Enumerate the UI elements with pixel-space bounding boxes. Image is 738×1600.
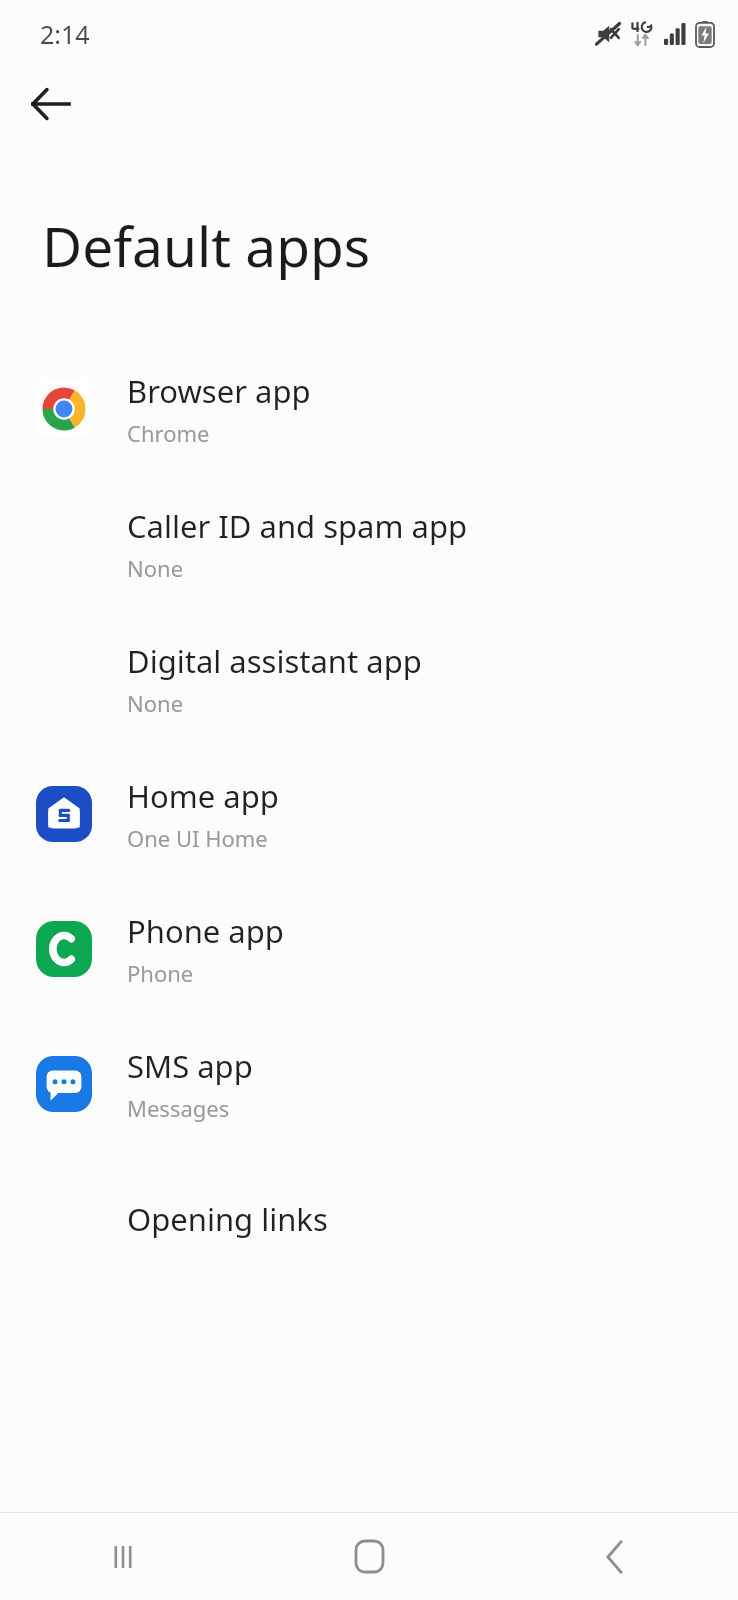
staticText: Phone app [127, 910, 284, 952]
staticText: Browser app [127, 370, 311, 412]
staticText: Digital assistant app [127, 640, 422, 682]
staticText: None [127, 688, 184, 718]
button[interactable]: Recent apps [0, 1513, 246, 1600]
staticText: One UI Home [127, 823, 268, 853]
button[interactable]: Phone app [0, 881, 738, 1016]
staticText: 2:14 [40, 17, 90, 51]
staticText: Home app [127, 775, 279, 817]
staticText: Phone [127, 958, 194, 988]
button[interactable]: Home app [0, 746, 738, 881]
staticText: Default apps [42, 208, 371, 283]
button[interactable]: Digital assistant app [0, 611, 738, 746]
button[interactable]: Browser app [0, 341, 738, 476]
button[interactable]: Home [246, 1513, 492, 1600]
staticText: None [127, 553, 184, 583]
staticText: Chrome [127, 418, 210, 448]
button[interactable]: Back [492, 1513, 738, 1600]
button[interactable]: Caller ID and spam app [0, 476, 738, 611]
staticText: Caller ID and spam app [127, 505, 468, 547]
staticText: SMS app [127, 1045, 253, 1087]
staticText: Messages [127, 1093, 230, 1123]
button[interactable]: SMS app [0, 1016, 738, 1151]
staticText: Opening links [127, 1198, 328, 1240]
button[interactable]: Opening links [0, 1151, 738, 1286]
button[interactable]: Navigate up [14, 68, 86, 140]
